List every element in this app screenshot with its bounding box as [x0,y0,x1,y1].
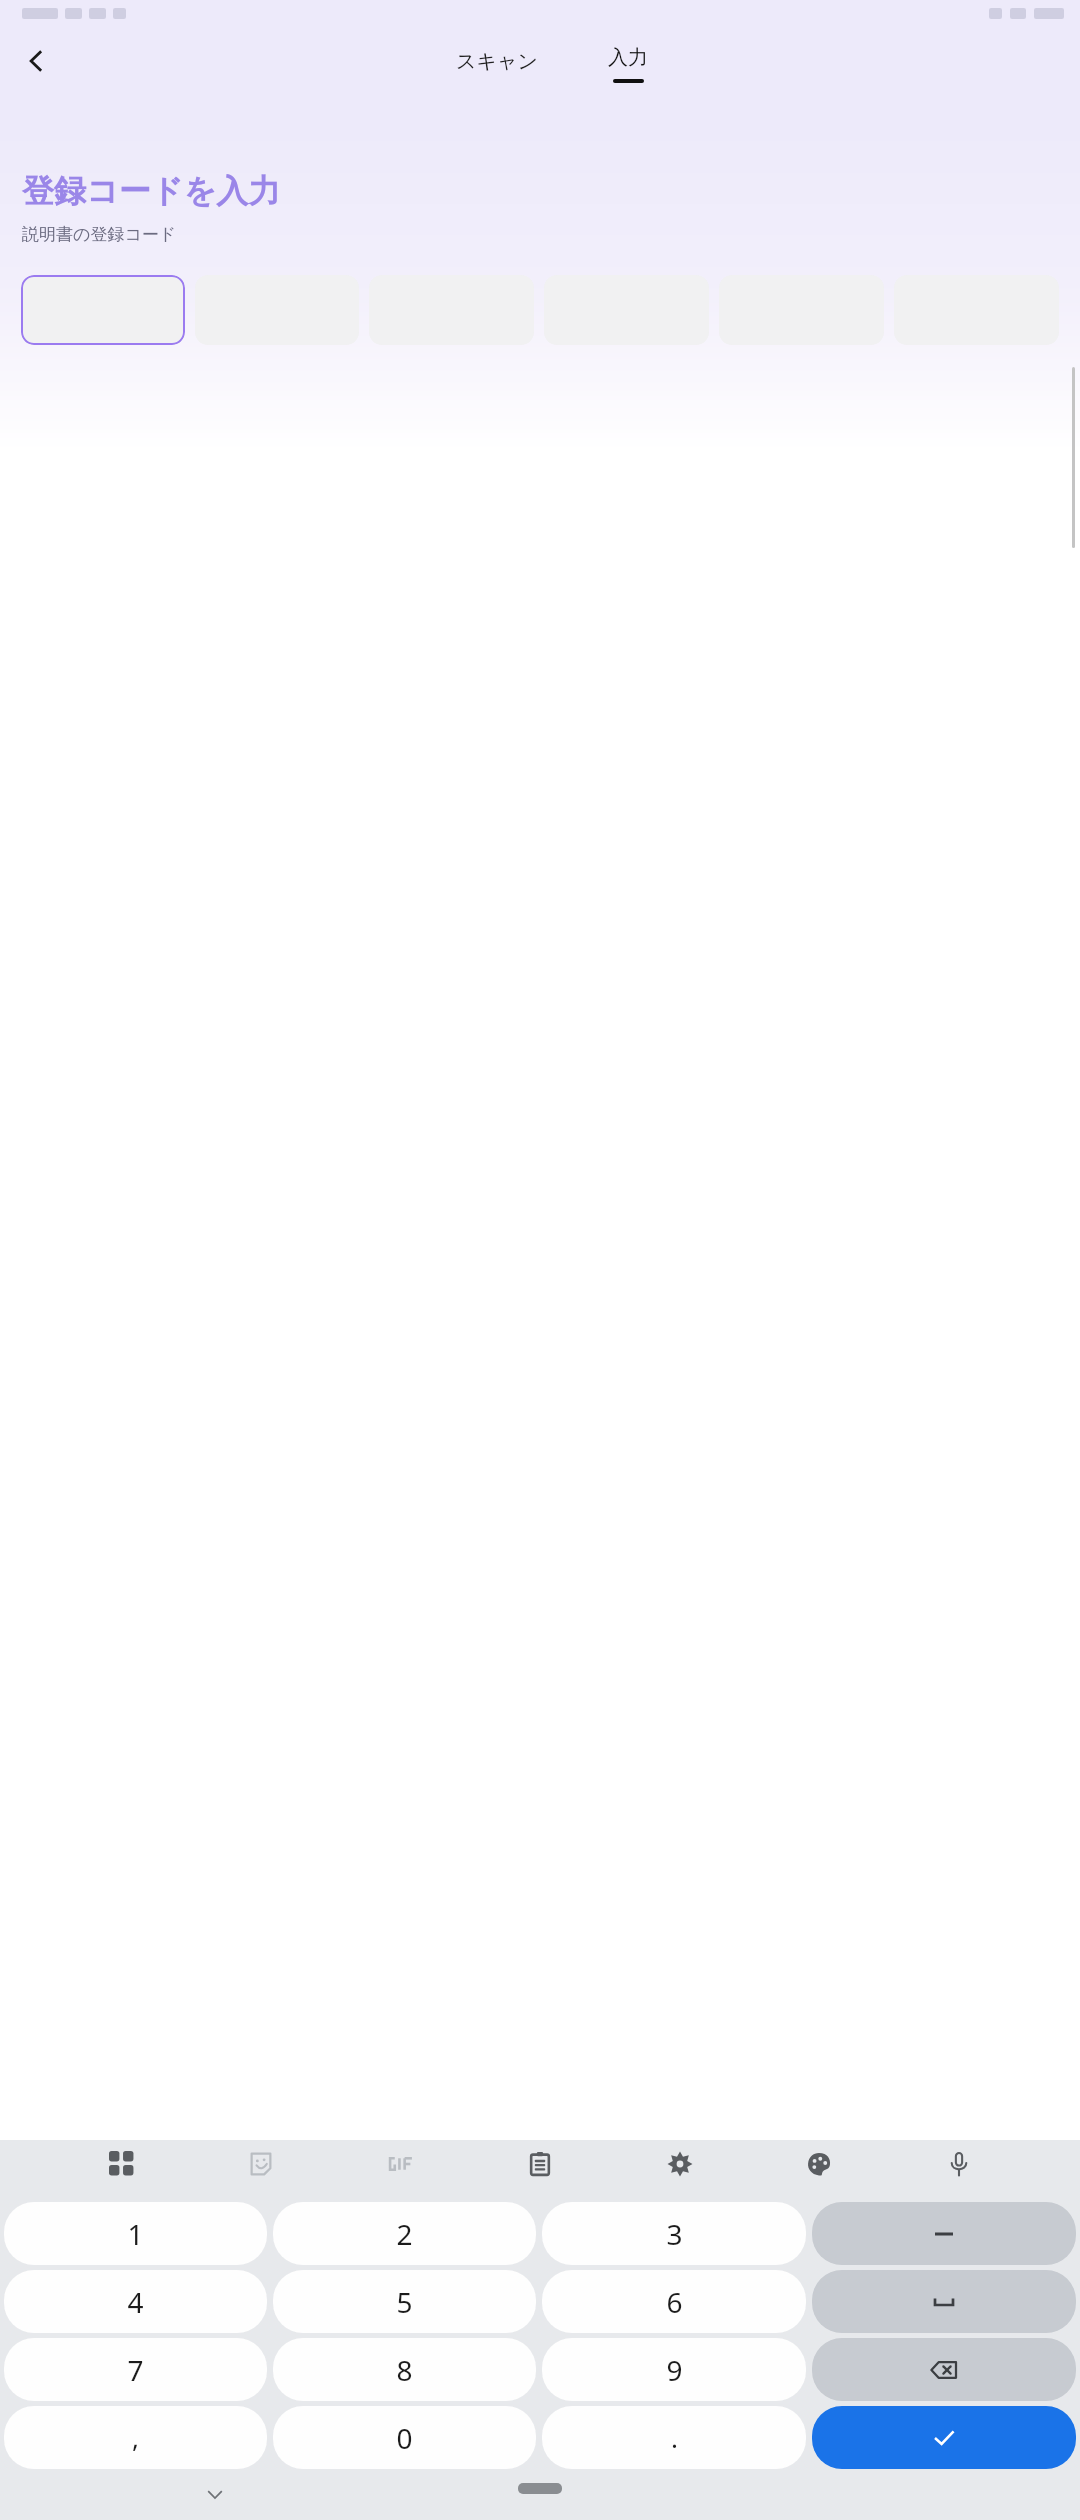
staticText: 2 [396,2215,413,2253]
staticText: 8 [396,2351,413,2389]
button[interactable]: 8 [273,2338,536,2401]
button[interactable]: 3 [542,2202,806,2265]
button[interactable]: 7 [4,2338,267,2401]
staticText: 0 [396,2419,413,2457]
button[interactable]: Themes [795,2140,843,2188]
button[interactable]: 6 [542,2270,806,2333]
button[interactable]: Minus [812,2202,1076,2265]
staticText: 4 [127,2283,144,2321]
button[interactable]: 2 [273,2202,536,2265]
button[interactable]: 入力 [598,39,658,83]
button[interactable]: 4 [4,2270,267,2333]
staticText: 9 [666,2351,683,2389]
button[interactable]: Back [8,33,64,89]
staticText: 6 [666,2283,683,2321]
button[interactable]: 0 [273,2406,536,2469]
button[interactable]: Keyboard layouts [98,2140,146,2188]
button[interactable]: Space [812,2270,1076,2333]
button[interactable]: Settings [656,2140,704,2188]
button[interactable]: 1 [4,2202,267,2265]
staticText: 7 [127,2351,144,2389]
staticText: , [132,2420,139,2455]
button[interactable]: スキャン [446,41,548,82]
button[interactable]: 5 [273,2270,536,2333]
staticText: スキャン [456,49,538,74]
button[interactable]: . [542,2406,806,2469]
staticText: 登録コードを入力 [22,171,281,211]
button[interactable] [21,275,185,345]
button[interactable]: , [4,2406,267,2469]
staticText: 5 [396,2283,413,2321]
button[interactable]: Hide keyboard [200,2479,230,2509]
staticText: . [671,2420,678,2455]
button[interactable]: Stickers [237,2140,285,2188]
button[interactable]: Clipboard [516,2140,564,2188]
button[interactable]: Voice input [935,2140,983,2188]
button[interactable]: Enter [812,2406,1076,2469]
staticText: 説明書の登録コード [22,224,177,245]
button[interactable]: 9 [542,2338,806,2401]
staticText: 1 [127,2215,144,2253]
button[interactable]: Backspace [812,2338,1076,2401]
staticText: 入力 [608,45,648,70]
staticText: 3 [666,2215,683,2253]
button[interactable]: GIF [377,2140,425,2188]
